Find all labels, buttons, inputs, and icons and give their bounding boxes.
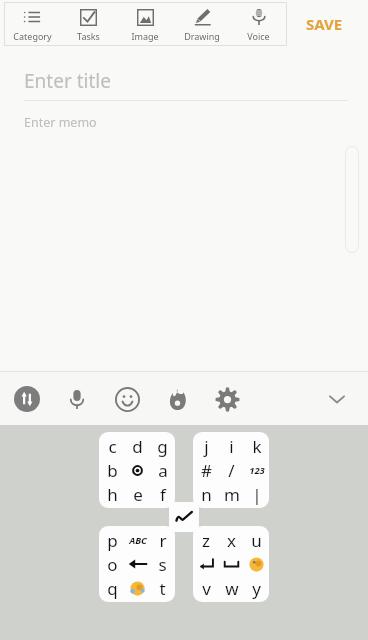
- button[interactable]: b: [99, 458, 125, 482]
- staticText: ABC: [129, 534, 147, 547]
- button[interactable]: Tasks: [60, 2, 116, 46]
- staticText: #: [201, 459, 212, 482]
- button[interactable]: n: [193, 482, 219, 506]
- staticText: Voice: [247, 30, 270, 42]
- staticText: p: [107, 529, 118, 552]
- button[interactable]: [219, 552, 244, 576]
- button[interactable]: Flame: [158, 380, 196, 418]
- button[interactable]: m: [219, 482, 244, 506]
- staticText: r: [159, 529, 167, 552]
- button[interactable]: x: [219, 528, 244, 552]
- button[interactable]: u: [244, 528, 269, 552]
- button[interactable]: a: [150, 458, 175, 482]
- button[interactable]: z: [193, 528, 219, 552]
- button[interactable]: [193, 552, 219, 576]
- staticText: o: [107, 553, 118, 576]
- staticText: a: [158, 459, 168, 482]
- button[interactable]: /: [219, 458, 244, 482]
- staticText: c: [108, 435, 117, 458]
- staticText: Tasks: [77, 30, 100, 42]
- staticText: Drawing: [184, 30, 220, 42]
- button[interactable]: y: [244, 576, 269, 600]
- button[interactable]: [125, 552, 150, 576]
- button[interactable]: #: [193, 458, 219, 482]
- staticText: u: [251, 529, 262, 552]
- button[interactable]: Category: [4, 2, 60, 46]
- staticText: i: [229, 435, 234, 458]
- staticText: g: [157, 435, 168, 458]
- button[interactable]: [125, 576, 150, 600]
- staticText: Enter memo: [24, 114, 97, 131]
- button[interactable]: Image: [116, 2, 173, 46]
- button[interactable]: ABC: [125, 528, 150, 552]
- staticText: z: [202, 529, 210, 552]
- button[interactable]: d: [125, 434, 150, 458]
- button[interactable]: w: [219, 576, 244, 600]
- staticText: n: [201, 483, 212, 506]
- staticText: d: [132, 435, 143, 458]
- button[interactable]: Settings: [208, 380, 246, 418]
- staticText: y: [252, 577, 261, 600]
- staticText: e: [133, 483, 143, 506]
- button[interactable]: |: [244, 482, 269, 506]
- staticText: |: [252, 483, 262, 506]
- staticText: /: [228, 459, 235, 482]
- button[interactable]: [244, 552, 269, 576]
- button[interactable]: [125, 458, 150, 482]
- staticText: t: [159, 577, 166, 600]
- button[interactable]: Voice input: [58, 380, 96, 418]
- staticText: f: [160, 483, 166, 506]
- staticText: v: [202, 577, 211, 600]
- button[interactable]: g: [150, 434, 175, 458]
- staticText: b: [107, 459, 118, 482]
- staticText: h: [107, 483, 118, 506]
- staticText: x: [227, 529, 236, 552]
- button[interactable]: t: [150, 576, 175, 600]
- staticText: 123: [249, 464, 265, 477]
- button[interactable]: Hide keyboard: [318, 380, 356, 418]
- staticText: m: [224, 483, 240, 506]
- button[interactable]: s: [150, 552, 175, 576]
- staticText: Image: [131, 30, 159, 42]
- button[interactable]: h: [99, 482, 125, 506]
- button[interactable]: i: [219, 434, 244, 458]
- button[interactable]: r: [150, 528, 175, 552]
- button[interactable]: o: [99, 552, 125, 576]
- staticText: k: [252, 435, 262, 458]
- button[interactable]: v: [193, 576, 219, 600]
- button[interactable]: Switch keyboard: [8, 380, 46, 418]
- button[interactable]: k: [244, 434, 269, 458]
- button[interactable]: f: [150, 482, 175, 506]
- staticText: q: [107, 577, 118, 600]
- staticText: Category: [13, 30, 52, 42]
- button[interactable]: j: [193, 434, 219, 458]
- button[interactable]: SAVE: [300, 8, 349, 40]
- button[interactable]: Drawing: [173, 2, 230, 46]
- staticText: j: [204, 435, 209, 458]
- button[interactable]: Enter title: [24, 68, 348, 101]
- button[interactable]: q: [99, 576, 125, 600]
- staticText: SAVE: [306, 14, 343, 34]
- button[interactable]: e: [125, 482, 150, 506]
- staticText: w: [225, 577, 239, 600]
- button[interactable]: Gesture key: [169, 502, 199, 532]
- button[interactable]: Voice: [230, 2, 287, 46]
- staticText: s: [158, 553, 167, 576]
- button[interactable]: 123: [244, 458, 269, 482]
- button[interactable]: Emoji: [108, 380, 146, 418]
- button[interactable]: p: [99, 528, 125, 552]
- button[interactable]: c: [99, 434, 125, 458]
- staticText: Enter title: [24, 68, 111, 94]
